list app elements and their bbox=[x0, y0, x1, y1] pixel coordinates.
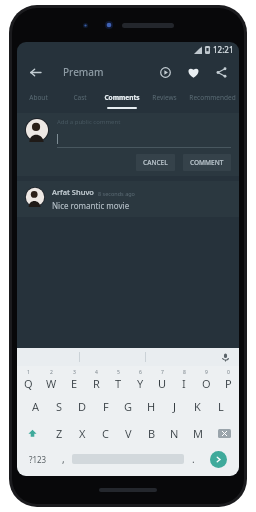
button[interactable]: 3 bbox=[63, 366, 85, 393]
staticText: K bbox=[194, 399, 201, 414]
staticText: Y bbox=[137, 376, 144, 391]
staticText: . bbox=[192, 452, 195, 466]
button[interactable]: K bbox=[186, 393, 209, 420]
button[interactable]: Cast bbox=[59, 87, 101, 107]
staticText: Arfat Shuvo bbox=[52, 187, 94, 197]
staticText: Recommended bbox=[189, 93, 236, 102]
button[interactable]: S bbox=[48, 393, 71, 420]
staticText: 7 bbox=[161, 369, 164, 376]
button[interactable]: Arfat Shuvo bbox=[17, 181, 239, 217]
staticText: T bbox=[115, 376, 122, 391]
staticText: J bbox=[173, 399, 177, 414]
button[interactable]: 4 bbox=[85, 366, 107, 393]
button[interactable]: H bbox=[140, 393, 163, 420]
staticText: 3 bbox=[73, 369, 76, 376]
button[interactable]: 7 bbox=[151, 366, 173, 393]
button[interactable]: 0 bbox=[217, 366, 239, 393]
staticText: 12:21 bbox=[213, 44, 234, 55]
staticText: S bbox=[56, 399, 63, 414]
button[interactable]: ?123 bbox=[21, 446, 54, 472]
button[interactable]: L bbox=[209, 393, 232, 420]
button[interactable]: G bbox=[117, 393, 140, 420]
staticText: L bbox=[218, 399, 224, 414]
staticText: R bbox=[93, 376, 100, 391]
staticText: Nice romantic movie bbox=[52, 200, 130, 211]
button[interactable]: V bbox=[117, 420, 140, 446]
button[interactable]: A bbox=[24, 393, 48, 420]
staticText: G bbox=[124, 399, 133, 414]
staticText: 8 bbox=[183, 369, 186, 376]
staticText: 6 bbox=[139, 369, 142, 376]
staticText: Premam bbox=[63, 65, 104, 79]
button[interactable]: Favorite bbox=[183, 62, 203, 82]
staticText: Q bbox=[24, 376, 33, 391]
staticText: A bbox=[32, 399, 40, 414]
button[interactable]: , bbox=[54, 446, 72, 472]
staticText: X bbox=[79, 426, 86, 441]
staticText: 8 seconds ago bbox=[98, 190, 135, 197]
button[interactable]: Voice input bbox=[219, 351, 231, 363]
staticText: H bbox=[147, 399, 156, 414]
button[interactable]: COMMENT bbox=[183, 154, 231, 171]
staticText: M bbox=[193, 426, 203, 441]
staticText: D bbox=[78, 399, 87, 414]
button[interactable]: X bbox=[71, 420, 94, 446]
staticText: ?123 bbox=[29, 454, 47, 465]
button[interactable]: 5 bbox=[107, 366, 129, 393]
staticText: I bbox=[182, 376, 186, 391]
staticText: E bbox=[71, 376, 78, 391]
button[interactable]: About bbox=[17, 87, 59, 107]
button[interactable]: 8 bbox=[173, 366, 195, 393]
staticText: CANCEL bbox=[143, 158, 168, 167]
button[interactable]: N bbox=[163, 420, 186, 446]
button[interactable]: 2 bbox=[40, 366, 63, 393]
staticText: B bbox=[148, 426, 156, 441]
button[interactable]: Reviews bbox=[143, 87, 185, 107]
staticText: 9 bbox=[205, 369, 208, 376]
staticText: O bbox=[202, 376, 211, 391]
staticText: P bbox=[225, 376, 232, 391]
button[interactable]: J bbox=[163, 393, 186, 420]
staticText: V bbox=[125, 426, 132, 441]
button[interactable]: M bbox=[186, 420, 209, 446]
staticText: Add a public comment bbox=[57, 118, 121, 126]
button[interactable]: Play trailer bbox=[155, 62, 175, 82]
button[interactable]: Enter bbox=[210, 451, 227, 468]
staticText: Z bbox=[56, 426, 63, 441]
button[interactable]: Shift bbox=[17, 420, 48, 446]
button[interactable]: C bbox=[94, 420, 117, 446]
staticText: 5 bbox=[117, 369, 120, 376]
staticText: U bbox=[158, 376, 167, 391]
staticText: About bbox=[29, 93, 48, 102]
staticText: , bbox=[62, 452, 65, 466]
button[interactable]: Share bbox=[211, 62, 231, 82]
staticText: F bbox=[103, 399, 109, 414]
button[interactable]: CANCEL bbox=[136, 154, 175, 171]
button[interactable]: Recommended bbox=[185, 87, 239, 107]
button[interactable] bbox=[57, 134, 231, 144]
button[interactable]: 9 bbox=[195, 366, 217, 393]
staticText: 4 bbox=[95, 369, 98, 376]
button[interactable]: 6 bbox=[129, 366, 151, 393]
button[interactable]: Comments bbox=[101, 87, 143, 107]
button[interactable]: F bbox=[94, 393, 117, 420]
button[interactable]: B bbox=[140, 420, 163, 446]
staticText: N bbox=[170, 426, 179, 441]
staticText: Comments bbox=[104, 93, 140, 102]
button[interactable]: Backspace bbox=[209, 420, 239, 446]
staticText: Reviews bbox=[152, 93, 177, 102]
button[interactable]: Z bbox=[48, 420, 71, 446]
staticText: W bbox=[46, 376, 57, 391]
staticText: C bbox=[102, 426, 109, 441]
staticText: Cast bbox=[73, 93, 87, 102]
button[interactable]: Back bbox=[25, 62, 45, 82]
button[interactable]: . bbox=[184, 446, 202, 472]
button[interactable]: D bbox=[71, 393, 94, 420]
staticText: 2 bbox=[50, 369, 53, 376]
staticText: 0 bbox=[227, 369, 230, 376]
staticText: COMMENT bbox=[190, 158, 224, 167]
button[interactable]: 1 bbox=[17, 366, 40, 393]
staticText: 1 bbox=[27, 369, 30, 376]
